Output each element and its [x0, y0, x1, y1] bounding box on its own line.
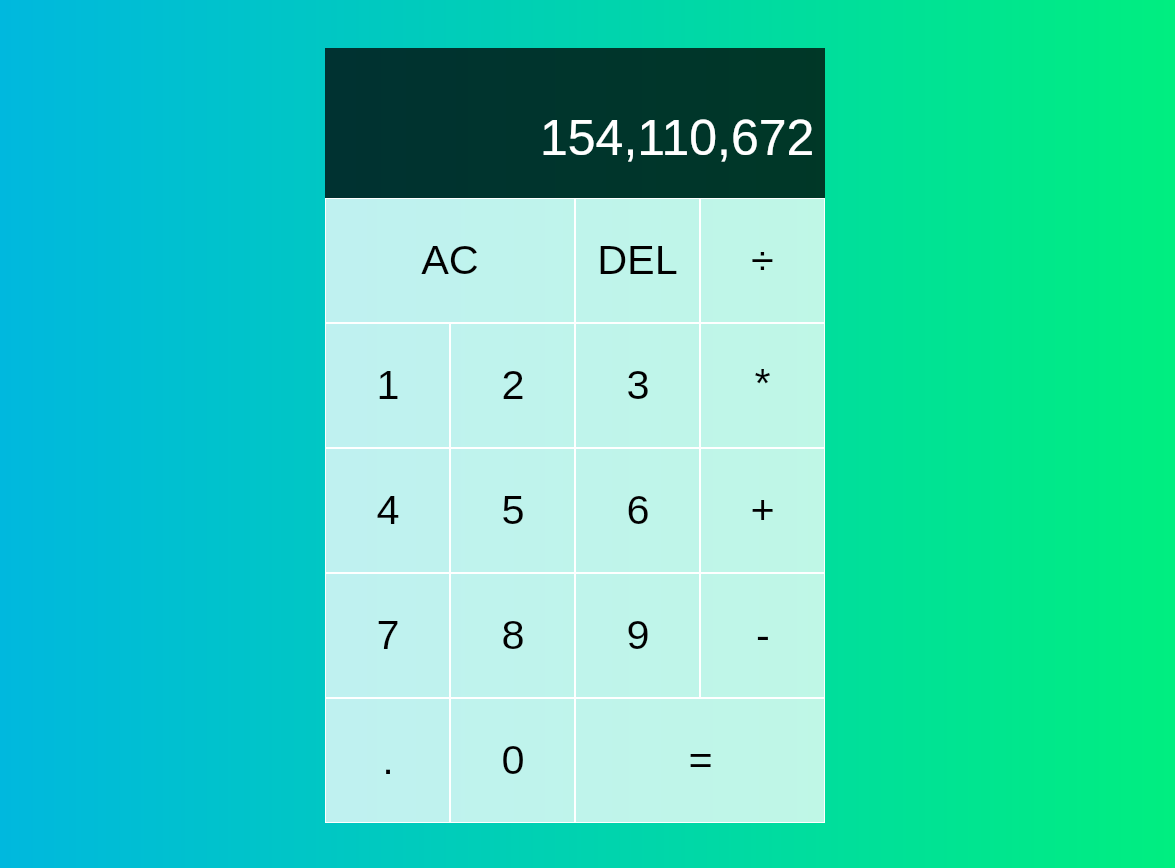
staticText: 154,110,672	[540, 110, 815, 166]
staticText: 4	[376, 486, 400, 532]
button[interactable]: Two	[451, 324, 574, 447]
staticText: *	[754, 359, 771, 405]
staticText: AC	[421, 236, 479, 282]
staticText: 2	[501, 361, 525, 407]
button[interactable]: Delete	[576, 199, 699, 322]
staticText: 9	[626, 611, 650, 657]
button[interactable]: Minus	[701, 574, 824, 697]
button[interactable]: One	[326, 324, 449, 447]
staticText: 3	[626, 361, 650, 407]
staticText: 0	[501, 736, 525, 782]
button[interactable]: Seven	[326, 574, 449, 697]
button[interactable]: Divide	[701, 199, 824, 322]
button[interactable]: Decimal point	[326, 699, 449, 822]
button[interactable]: Plus	[701, 449, 824, 572]
staticText: 7	[376, 611, 400, 657]
button[interactable]: Multiply	[701, 324, 824, 447]
staticText: 8	[501, 611, 525, 657]
button[interactable]: Six	[576, 449, 699, 572]
button[interactable]: Three	[576, 324, 699, 447]
button[interactable]: All clear	[326, 199, 574, 322]
button[interactable]: Equals	[576, 699, 824, 822]
staticText: 5	[501, 486, 525, 532]
button[interactable]: Four	[326, 449, 449, 572]
button[interactable]: Zero	[451, 699, 574, 822]
button[interactable]: Eight	[451, 574, 574, 697]
staticText: DEL	[597, 236, 678, 282]
staticText: =	[688, 736, 713, 782]
staticText: -	[756, 611, 770, 657]
staticText: +	[750, 486, 775, 532]
staticText: .	[382, 736, 394, 782]
staticText: 6	[626, 486, 650, 532]
staticText: 1	[376, 361, 400, 407]
staticText: ÷	[751, 236, 774, 282]
button[interactable]: Five	[451, 449, 574, 572]
button[interactable]: Nine	[576, 574, 699, 697]
